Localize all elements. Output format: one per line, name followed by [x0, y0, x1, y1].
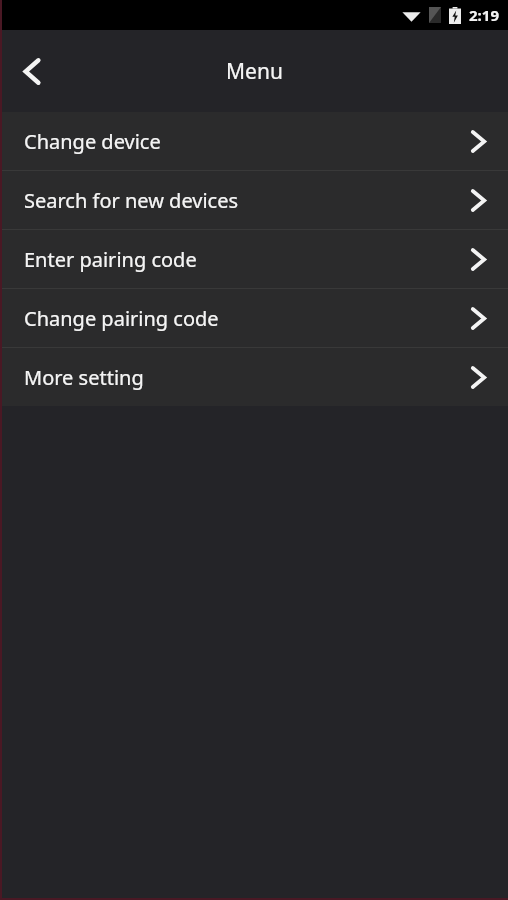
staticText: Change device	[24, 128, 161, 155]
staticText: Enter pairing code	[24, 246, 197, 273]
staticText: Change pairing code	[24, 305, 219, 332]
staticText: Search for new devices	[24, 187, 239, 214]
button[interactable]: Change pairing code	[0, 289, 508, 347]
button[interactable]: Enter pairing code	[0, 230, 508, 288]
button[interactable]: Back	[0, 30, 64, 112]
button[interactable]: Search for new devices	[0, 171, 508, 229]
button[interactable]: Change device	[0, 112, 508, 170]
staticText: Menu	[226, 57, 283, 86]
button[interactable]: More setting	[0, 348, 508, 406]
staticText: 2:19	[469, 5, 499, 25]
staticText: More setting	[24, 364, 144, 391]
